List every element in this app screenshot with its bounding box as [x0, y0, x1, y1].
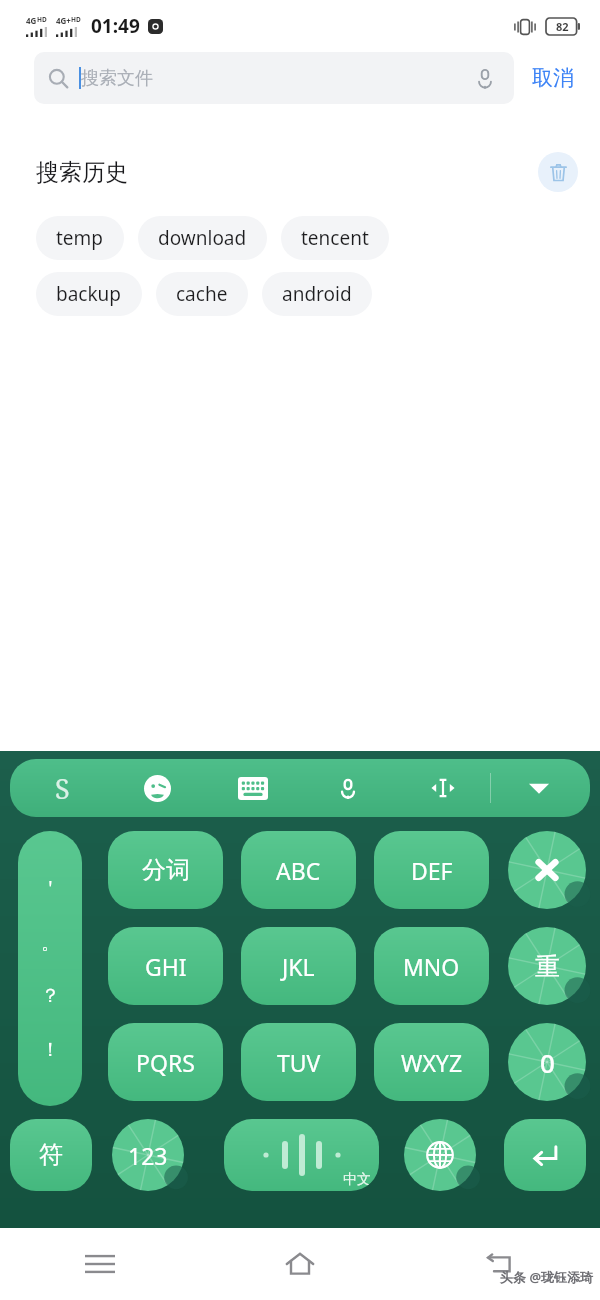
- button[interactable]: ABC: [241, 831, 356, 909]
- staticText: ！: [41, 1038, 60, 1062]
- button[interactable]: 符: [10, 1119, 92, 1191]
- button[interactable]: backup: [36, 272, 142, 316]
- button[interactable]: [508, 831, 586, 909]
- staticText: ABC: [276, 855, 321, 886]
- staticText: 中文: [343, 1171, 371, 1189]
- staticText: 123: [128, 1140, 168, 1171]
- staticText: ': [48, 875, 53, 901]
- button[interactable]: Keyboard layout: [205, 759, 300, 817]
- staticText: backup: [56, 281, 122, 307]
- button[interactable]: Enter: [504, 1119, 586, 1191]
- button[interactable]: 分词: [108, 831, 223, 909]
- staticText: MNO: [403, 951, 460, 982]
- staticText: DEF: [411, 855, 453, 886]
- staticText: 重: [535, 951, 560, 982]
- button[interactable]: ': [18, 831, 82, 1106]
- staticText: 0: [540, 1045, 555, 1080]
- button[interactable]: android: [262, 272, 372, 316]
- staticText: 4G: [26, 15, 37, 26]
- staticText: 搜索文件: [81, 67, 153, 90]
- staticText: 4G+: [56, 15, 71, 26]
- button[interactable]: [404, 1119, 476, 1191]
- button[interactable]: MNO: [374, 927, 489, 1005]
- button[interactable]: GHI: [108, 927, 223, 1005]
- button[interactable]: Home: [200, 1228, 400, 1300]
- button[interactable]: download: [138, 216, 267, 260]
- button[interactable]: Back: [400, 1228, 600, 1300]
- staticText: 取消: [532, 65, 574, 91]
- button[interactable]: JKL: [241, 927, 356, 1005]
- button[interactable]: Sogou input: [14, 759, 110, 817]
- button[interactable]: 重: [508, 927, 586, 1005]
- staticText: 头条 @珑钰添琦: [500, 1268, 594, 1286]
- button[interactable]: 0: [508, 1023, 586, 1101]
- staticText: 符: [39, 1140, 63, 1170]
- staticText: download: [158, 225, 247, 251]
- button[interactable]: Recent apps: [0, 1228, 200, 1300]
- button[interactable]: 取消: [526, 59, 580, 97]
- button[interactable]: tencent: [281, 216, 389, 260]
- staticText: android: [282, 281, 352, 307]
- staticText: TUV: [277, 1047, 321, 1078]
- button[interactable]: cache: [156, 272, 248, 316]
- button[interactable]: Clear search history: [538, 152, 578, 192]
- staticText: 分词: [142, 855, 190, 885]
- staticText: 搜索历史: [36, 158, 128, 187]
- staticText: JKL: [282, 951, 315, 982]
- staticText: PQRS: [136, 1047, 195, 1078]
- staticText: GHI: [145, 951, 187, 982]
- button[interactable]: 搜索文件: [34, 52, 514, 104]
- button[interactable]: Hide keyboard: [491, 759, 586, 817]
- staticText: temp: [56, 225, 104, 251]
- button[interactable]: Move cursor: [395, 759, 490, 817]
- staticText: HD: [37, 15, 47, 24]
- button[interactable]: Emoji: [110, 759, 205, 817]
- button[interactable]: PQRS: [108, 1023, 223, 1101]
- button[interactable]: DEF: [374, 831, 489, 909]
- button[interactable]: Space: [224, 1119, 379, 1191]
- staticText: WXYZ: [401, 1047, 463, 1078]
- staticText: cache: [176, 281, 228, 307]
- staticText: HD: [71, 15, 81, 24]
- button[interactable]: Voice input: [300, 759, 395, 817]
- button[interactable]: 123: [112, 1119, 184, 1191]
- staticText: S: [55, 770, 70, 807]
- staticText: 01:49: [91, 13, 140, 39]
- staticText: 。: [41, 931, 60, 955]
- button[interactable]: TUV: [241, 1023, 356, 1101]
- button[interactable]: Voice search: [470, 63, 500, 93]
- button[interactable]: WXYZ: [374, 1023, 489, 1101]
- staticText: 82: [556, 19, 569, 34]
- staticText: tencent: [301, 225, 369, 251]
- button[interactable]: temp: [36, 216, 124, 260]
- staticText: ？: [41, 984, 60, 1008]
